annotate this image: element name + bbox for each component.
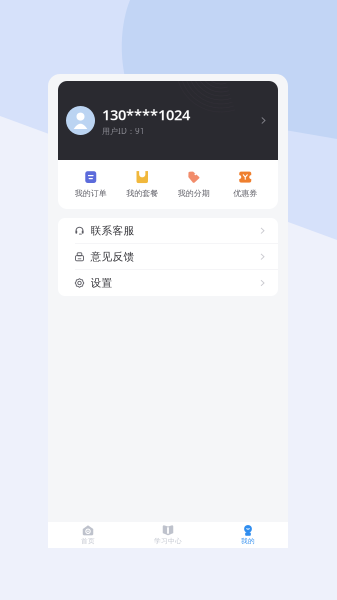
button[interactable]: 我的订单 [65, 171, 116, 198]
staticText: 首页 [81, 537, 95, 545]
staticText: 我的订单 [75, 188, 107, 198]
staticText: 设置 [90, 276, 112, 289]
staticText: 优惠券 [233, 188, 257, 198]
staticText: 联系客服 [90, 224, 134, 237]
staticText: 130****1024 [102, 105, 190, 124]
button[interactable]: 联系客服 [58, 218, 278, 244]
button[interactable]: 设置 [58, 270, 278, 296]
staticText: 我的分期 [178, 188, 210, 198]
button[interactable]: 意见反馈 [58, 244, 278, 270]
button[interactable]: 130****1024 [58, 81, 278, 160]
button[interactable]: 我的分期 [168, 171, 219, 198]
button[interactable]: 学习中心 [128, 522, 208, 548]
button[interactable]: 优惠券 [219, 171, 271, 198]
staticText: 我的 [241, 537, 255, 545]
button[interactable]: 我的套餐 [116, 171, 168, 198]
button[interactable]: 首页 [48, 522, 128, 548]
staticText: 用户ID：91 [102, 126, 145, 136]
staticText: 意见反馈 [90, 250, 134, 263]
staticText: 学习中心 [154, 537, 182, 545]
staticText: 我的套餐 [126, 188, 158, 198]
button[interactable]: 我的 [208, 522, 288, 548]
